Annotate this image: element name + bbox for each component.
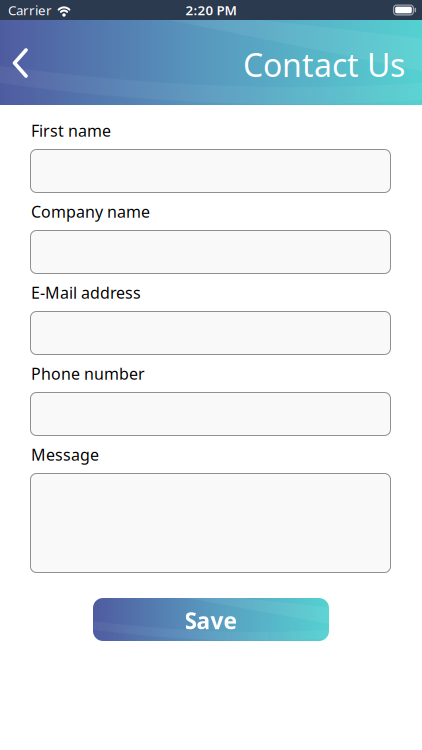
staticText: 2:20 PM (185, 1, 236, 19)
staticText: E-Mail address (31, 282, 141, 303)
staticText: Message (31, 444, 99, 465)
staticText: Contact Us (243, 43, 405, 86)
staticText: Save (184, 605, 237, 635)
button[interactable]: Back (0, 20, 44, 105)
staticText: Company name (31, 201, 150, 222)
staticText: Phone number (31, 363, 145, 384)
staticText: First name (31, 120, 111, 141)
button[interactable]: Save (93, 598, 329, 641)
staticText: Carrier (8, 1, 52, 19)
